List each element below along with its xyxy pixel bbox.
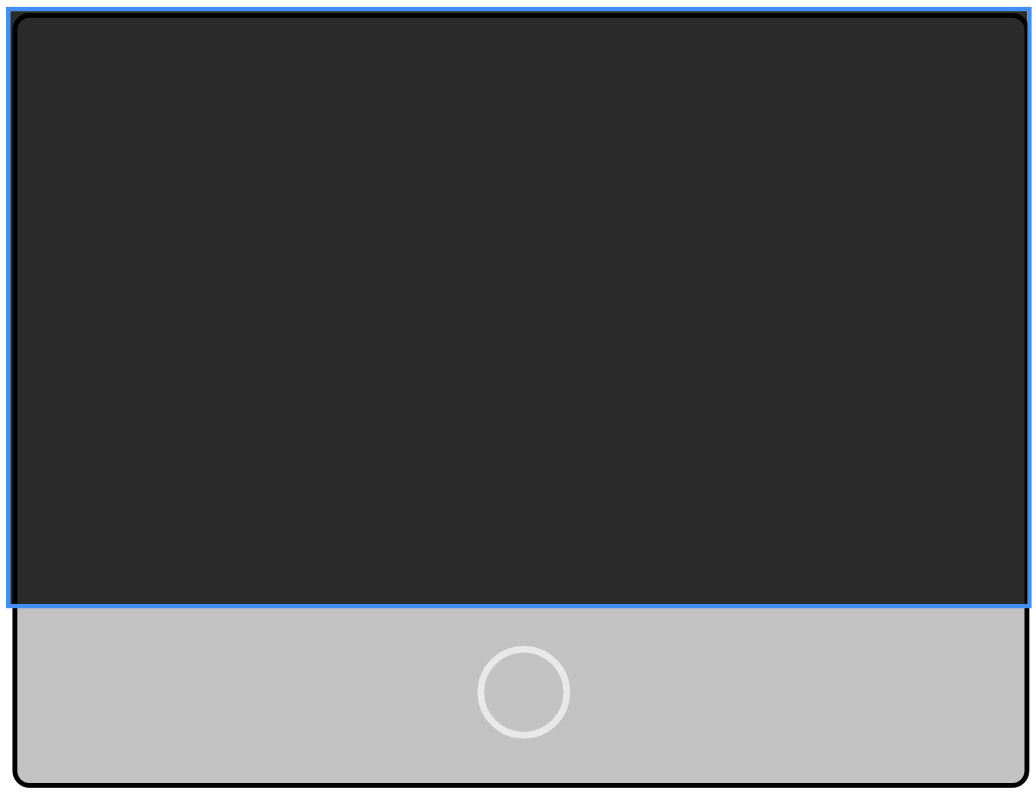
button[interactable]: App screen preview [0,0,1036,608]
button[interactable]: Home [477,645,571,739]
